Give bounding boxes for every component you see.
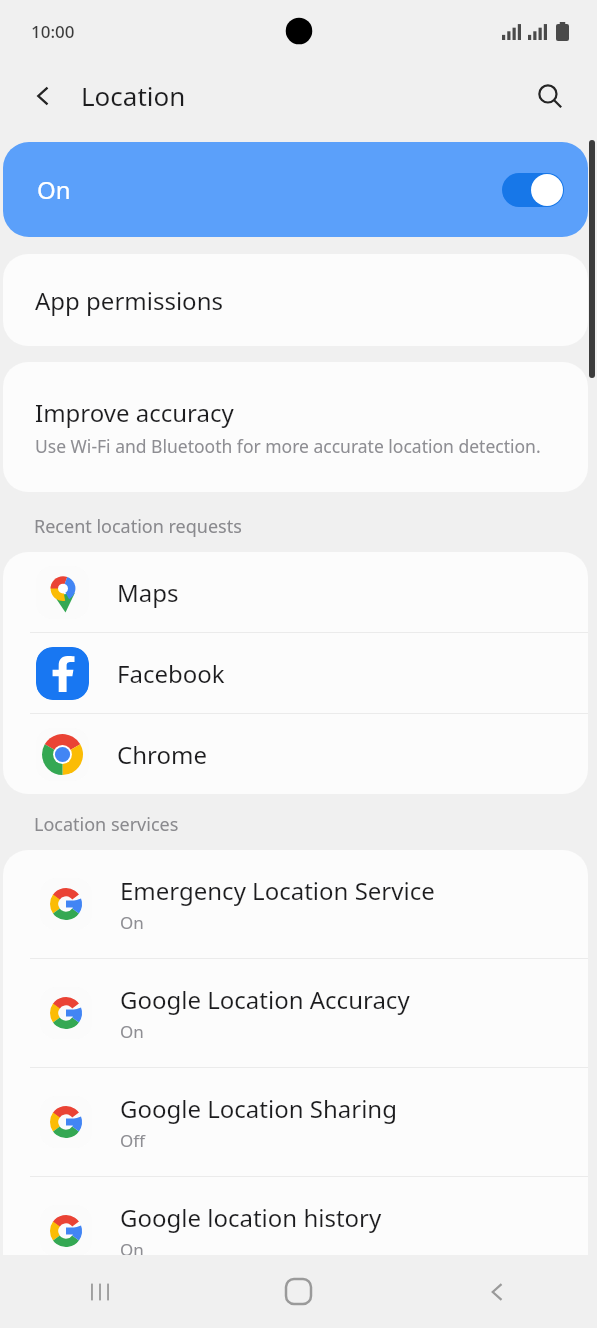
staticText: On (120, 911, 144, 934)
button[interactable]: Maps (3, 552, 588, 632)
staticText: Facebook (117, 657, 225, 690)
button[interactable]: Search (527, 73, 573, 119)
button[interactable]: App permissions (3, 254, 588, 346)
button[interactable]: Google location history (3, 1177, 588, 1285)
button[interactable]: Home (199, 1255, 398, 1328)
staticText: Use Wi-Fi and Bluetooth for more accurat… (35, 434, 541, 458)
staticText: Google Location Accuracy (120, 983, 410, 1016)
staticText: Emergency Location Service (120, 874, 435, 907)
staticText: Maps (117, 576, 179, 609)
button[interactable]: Chrome (3, 714, 588, 794)
button[interactable]: Recents (0, 1255, 199, 1328)
button[interactable]: Back (398, 1255, 597, 1328)
button[interactable]: Improve accuracy (3, 362, 588, 492)
staticText: App permissions (35, 284, 223, 317)
button[interactable]: Back (22, 74, 66, 118)
button[interactable]: Google Location Sharing (3, 1068, 588, 1176)
button[interactable]: Google Location Accuracy (3, 959, 588, 1067)
button[interactable]: Facebook (3, 633, 588, 713)
staticText: Google Location Sharing (120, 1092, 397, 1125)
staticText: On (37, 173, 71, 206)
staticText: Improve accuracy (35, 396, 234, 429)
staticText: On (120, 1020, 144, 1043)
button[interactable]: Emergency Location Service (3, 850, 588, 958)
staticText: Recent location requests (34, 514, 242, 539)
staticText: Google location history (120, 1201, 382, 1234)
staticText: Location services (34, 812, 179, 837)
staticText: 10:00 (31, 20, 75, 43)
staticText: Location (81, 78, 186, 113)
staticText: On (120, 1238, 144, 1261)
staticText: Chrome (117, 738, 207, 771)
staticText: Off (120, 1129, 145, 1152)
button[interactable]: On (3, 142, 588, 237)
